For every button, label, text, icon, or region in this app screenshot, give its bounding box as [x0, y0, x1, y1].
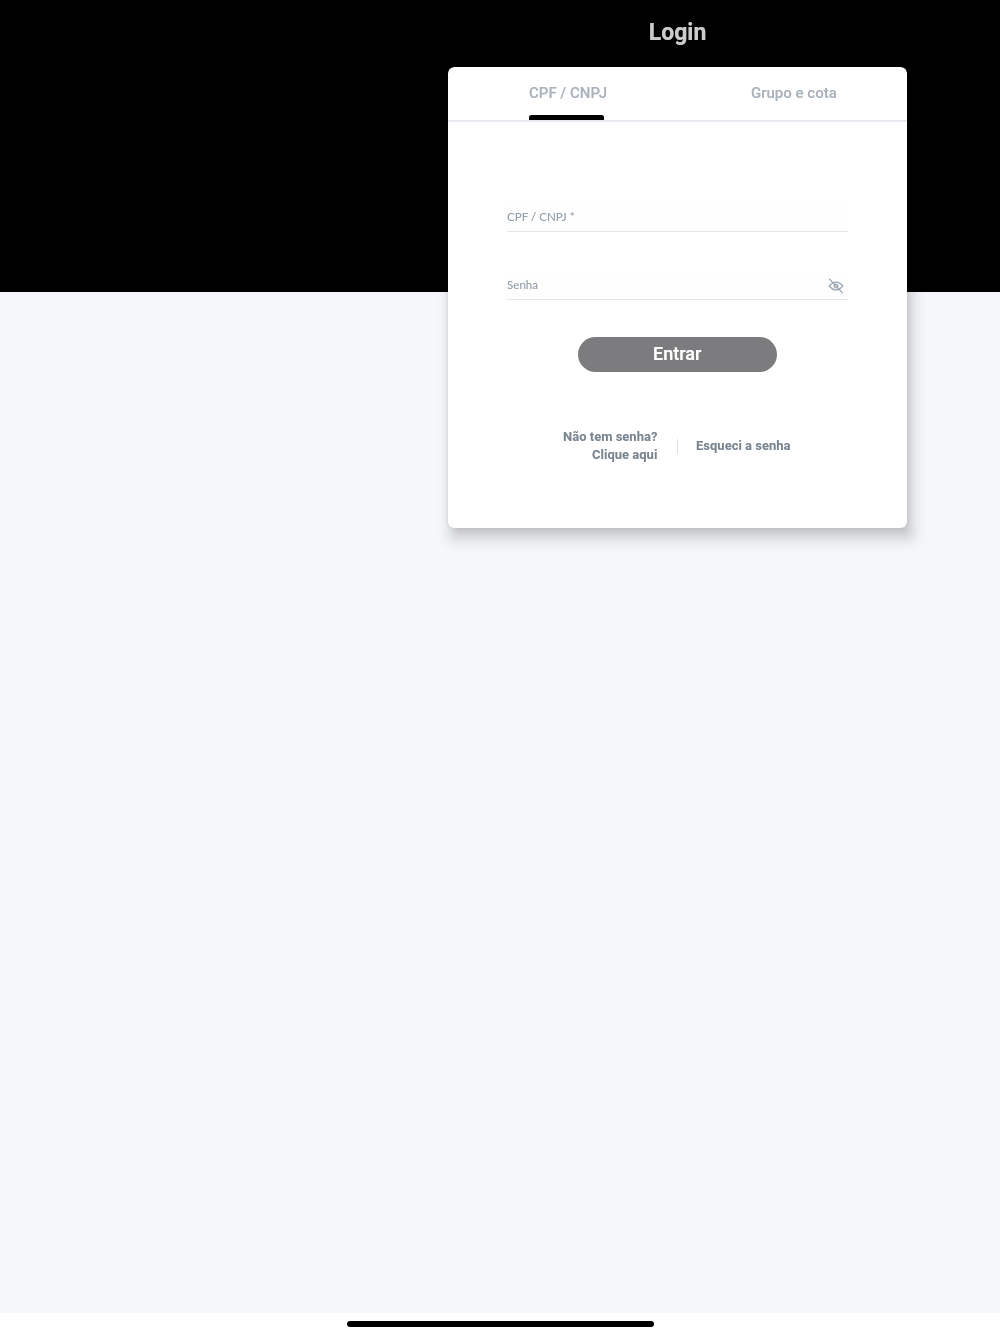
staticText: Login [448, 19, 907, 46]
staticText: CPF / CNPJ * [507, 210, 575, 224]
button[interactable]: CPF / CNPJ [455, 67, 681, 119]
staticText: Esqueci a senha [696, 438, 791, 453]
staticText: Entrar [653, 343, 702, 364]
staticText: CPF / CNPJ [529, 84, 608, 102]
button[interactable]: Senha [507, 271, 848, 299]
button[interactable]: Não tem senha? [563, 429, 658, 462]
button[interactable]: Grupo e cota [681, 67, 907, 119]
staticText: Não tem senha? [563, 429, 658, 444]
staticText: Senha [507, 278, 539, 292]
staticText: Grupo e cota [751, 84, 837, 102]
button[interactable]: Mostrar senha [824, 274, 848, 298]
button[interactable]: Entrar [578, 337, 777, 372]
staticText: Clique aqui [592, 447, 658, 462]
button[interactable]: CPF / CNPJ * [507, 203, 848, 231]
button[interactable]: Esqueci a senha [696, 438, 791, 453]
